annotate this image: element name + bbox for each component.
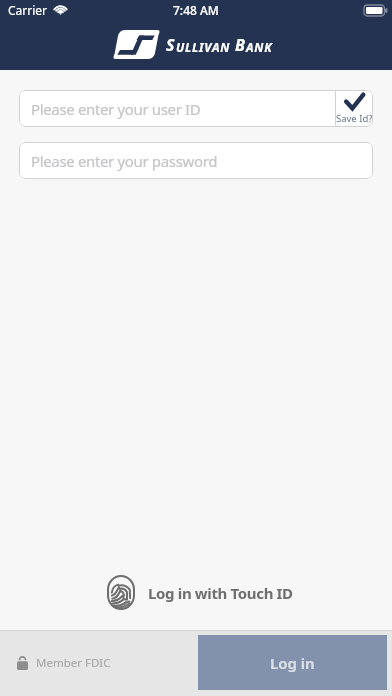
- staticText: Log in: [270, 653, 315, 673]
- staticText: Please enter your user ID: [31, 99, 201, 119]
- button[interactable]: Please enter your user ID: [19, 90, 335, 127]
- staticText: 7:48 AM: [173, 2, 219, 18]
- button[interactable]: Member FDIC: [17, 655, 111, 671]
- staticText: Log in with Touch ID: [148, 583, 293, 603]
- button[interactable]: Log in with Touch ID: [99, 569, 301, 616]
- staticText: Please enter your password: [31, 151, 218, 171]
- button[interactable]: Please enter your password: [19, 142, 373, 179]
- staticText: Save Id?: [336, 112, 373, 125]
- staticText: ULLIVAN: [176, 39, 231, 55]
- button[interactable]: Log in: [198, 635, 387, 690]
- staticText: Member FDIC: [36, 655, 111, 671]
- staticText: ANK: [246, 39, 273, 55]
- staticText: Carrier: [8, 2, 48, 18]
- staticText: S: [166, 34, 176, 56]
- staticText: B: [235, 34, 246, 56]
- button[interactable]: Save Id: [336, 90, 373, 127]
